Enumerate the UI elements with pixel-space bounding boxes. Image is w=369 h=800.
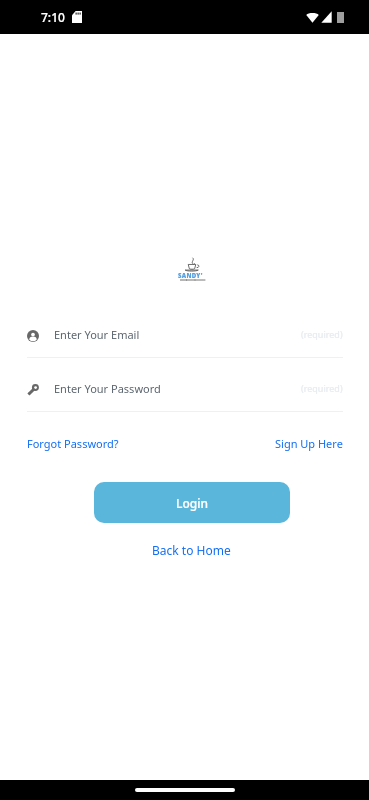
button[interactable]: Enter Your Password <box>0 383 369 412</box>
staticText: Sign Up Here <box>275 436 343 451</box>
staticText: Back to Home <box>152 542 231 558</box>
staticText: SANDY'S <box>178 272 206 280</box>
staticText: (required) <box>301 382 343 394</box>
other: Home <box>135 788 235 792</box>
staticText: Forgot Password? <box>27 436 119 451</box>
button[interactable]: Enter Your Email <box>0 329 369 358</box>
staticText: Enter Your Email <box>54 327 140 340</box>
staticText: 7:10 <box>41 9 65 25</box>
button[interactable]: Back to Home <box>152 542 231 558</box>
staticText: Login <box>176 495 208 511</box>
staticText: Enter Your Password <box>54 381 161 394</box>
button[interactable]: Login <box>94 482 290 523</box>
button[interactable]: Sign Up Here <box>275 436 343 451</box>
button[interactable]: Forgot Password? <box>27 436 119 451</box>
staticText: (required) <box>301 328 343 340</box>
